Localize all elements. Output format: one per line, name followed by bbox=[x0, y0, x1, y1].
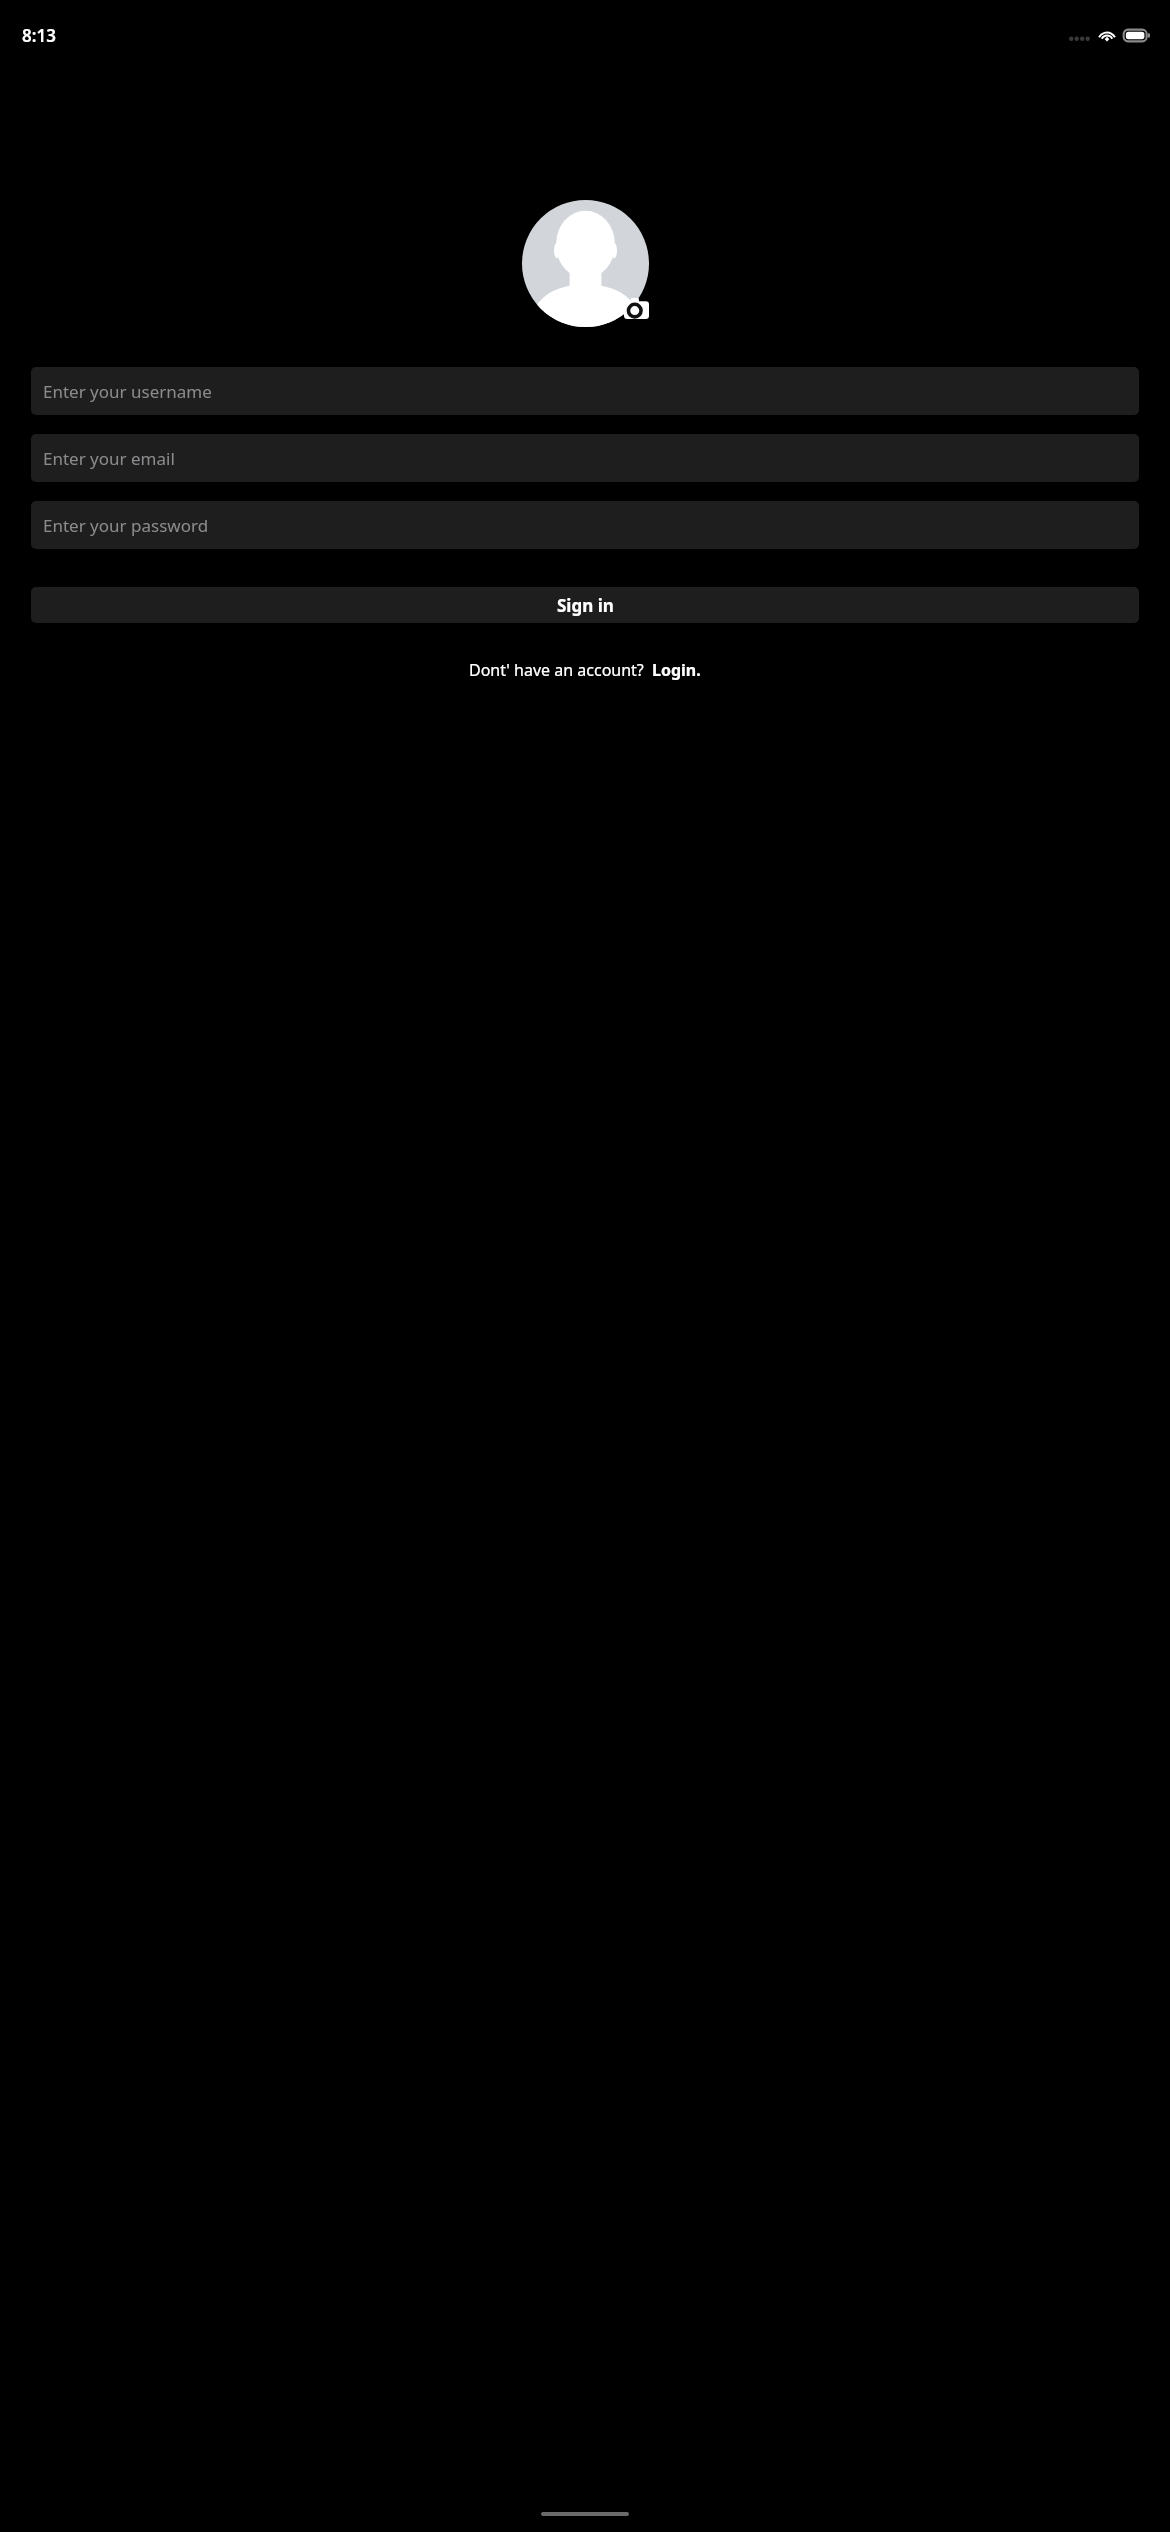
button[interactable]: Enter your email bbox=[31, 434, 1139, 482]
staticText: Enter your password bbox=[43, 514, 209, 537]
staticText: 8:13 bbox=[22, 24, 56, 47]
button[interactable]: Dont' have an account? bbox=[31, 659, 1139, 681]
button[interactable]: Change profile photo bbox=[522, 200, 649, 327]
button[interactable]: Enter your password bbox=[31, 501, 1139, 549]
staticText: Enter your username bbox=[43, 380, 212, 403]
staticText: Enter your email bbox=[43, 447, 175, 470]
button[interactable]: Enter your username bbox=[31, 367, 1139, 415]
button[interactable]: Sign in bbox=[31, 587, 1139, 623]
staticText: Sign in bbox=[557, 594, 614, 617]
staticText: Login. bbox=[652, 659, 701, 681]
staticText: Dont' have an account? bbox=[469, 659, 644, 681]
